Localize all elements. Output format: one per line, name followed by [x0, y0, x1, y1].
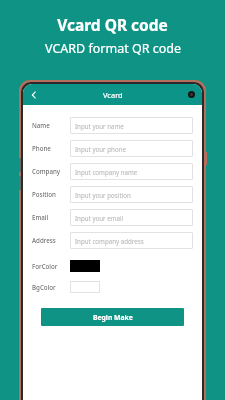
- staticText: Begin Make: [93, 313, 133, 322]
- staticText: Input company address: [75, 237, 144, 245]
- button[interactable]: Email: [32, 207, 193, 227]
- staticText: BgColor: [32, 283, 66, 291]
- staticText: VCARD format QR code: [45, 40, 181, 57]
- staticText: Email: [32, 213, 66, 221]
- button[interactable]: Position: [32, 184, 193, 204]
- staticText: Position: [32, 190, 66, 198]
- button[interactable]: Company: [32, 161, 193, 181]
- button[interactable]: ForColor: [32, 257, 193, 275]
- staticText: Input your phone: [75, 145, 126, 153]
- button[interactable]: Back: [27, 88, 41, 102]
- staticText: Company: [32, 167, 66, 175]
- staticText: Address: [32, 236, 66, 244]
- staticText: Name: [32, 121, 66, 129]
- button[interactable]: Phone: [32, 138, 193, 158]
- staticText: Input your email: [75, 214, 124, 222]
- staticText: Input your name: [75, 122, 124, 130]
- button[interactable]: Begin Make: [41, 308, 184, 326]
- staticText: ForColor: [32, 262, 66, 270]
- staticText: Vcard: [103, 90, 123, 100]
- staticText: Input company name: [75, 168, 138, 176]
- staticText: Input your position: [75, 191, 131, 199]
- staticText: Phone: [32, 144, 66, 152]
- staticText: Vcard QR code: [57, 14, 168, 35]
- button[interactable]: Address: [32, 230, 193, 250]
- button[interactable]: BgColor: [32, 278, 193, 296]
- button[interactable]: Name: [32, 115, 193, 135]
